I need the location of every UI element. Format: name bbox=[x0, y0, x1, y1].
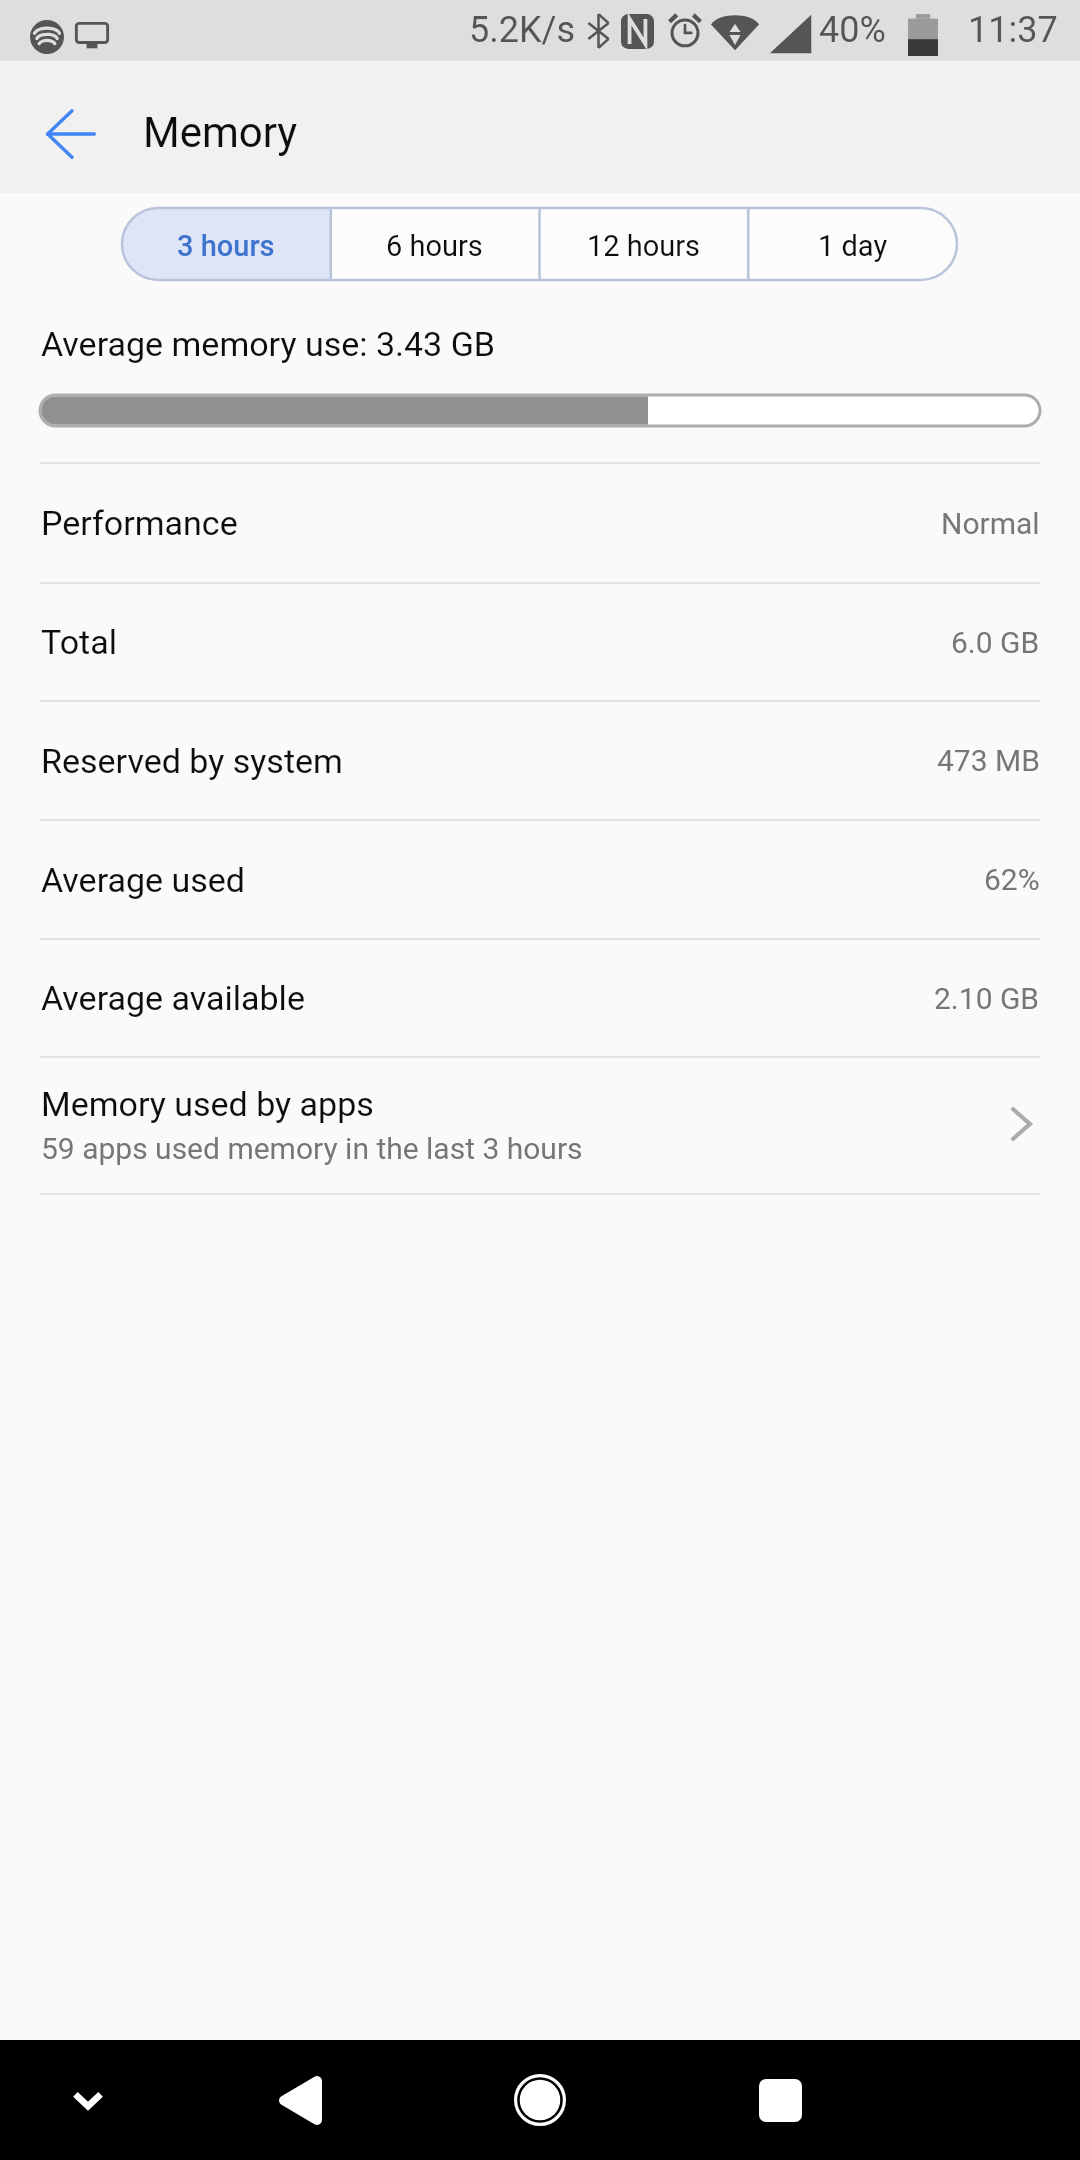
button[interactable]: Performance bbox=[0, 462, 1080, 582]
staticText: Total bbox=[41, 622, 117, 662]
staticText: 6.0 GB bbox=[951, 625, 1040, 660]
staticText: 11:37 bbox=[968, 9, 1058, 51]
staticText: 6 hours bbox=[386, 229, 483, 263]
staticText: Average memory use: 3.43 GB bbox=[41, 324, 495, 364]
button[interactable]: Home bbox=[480, 2040, 600, 2160]
button[interactable]: Back bbox=[240, 2040, 360, 2160]
staticText: 1 day bbox=[818, 229, 888, 263]
staticText: Memory used by apps bbox=[41, 1084, 374, 1124]
staticText: Performance bbox=[41, 503, 238, 543]
staticText: 2.10 GB bbox=[934, 981, 1040, 1016]
staticText: Memory bbox=[143, 108, 298, 157]
staticText: 40% bbox=[819, 9, 886, 51]
button[interactable]: Hide keyboard bbox=[28, 2040, 148, 2160]
button[interactable]: Reserved by system bbox=[0, 700, 1080, 819]
button[interactable]: 12 hours bbox=[539, 208, 748, 280]
button[interactable]: Memory used by apps bbox=[0, 1056, 1080, 1193]
button[interactable]: Recent apps bbox=[720, 2040, 840, 2160]
button[interactable]: Average used bbox=[0, 819, 1080, 938]
staticText: 5.2K/s bbox=[469, 9, 575, 51]
staticText: 59 apps used memory in the last 3 hours bbox=[41, 1131, 583, 1166]
staticText: Average available bbox=[41, 978, 305, 1018]
staticText: 62% bbox=[984, 862, 1040, 897]
staticText: Reserved by system bbox=[41, 741, 343, 781]
button[interactable]: Navigate up bbox=[19, 82, 123, 186]
staticText: Average used bbox=[41, 860, 246, 900]
button[interactable]: Total bbox=[0, 582, 1080, 700]
button[interactable]: 3 hours bbox=[122, 208, 330, 280]
staticText: Normal bbox=[941, 506, 1040, 541]
button[interactable]: Average available bbox=[0, 938, 1080, 1056]
button[interactable]: 1 day bbox=[748, 208, 957, 280]
staticText: 3 hours bbox=[177, 229, 275, 263]
button[interactable]: 6 hours bbox=[330, 208, 539, 280]
staticText: 473 MB bbox=[937, 743, 1040, 778]
staticText: 12 hours bbox=[587, 229, 701, 263]
